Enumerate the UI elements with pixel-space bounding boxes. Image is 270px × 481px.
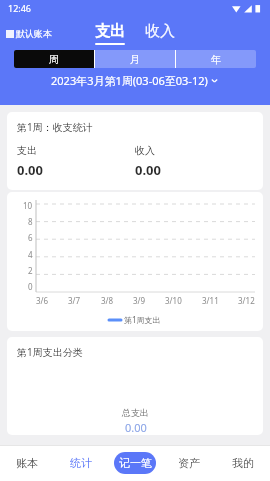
staticText: 资产 (178, 456, 200, 470)
staticText: 年 (211, 53, 221, 66)
staticText: 记一笔 (119, 456, 152, 470)
staticText: 2 (28, 265, 33, 276)
staticText: 3/8 (101, 295, 114, 306)
staticText: 默认账本 (16, 28, 52, 39)
button[interactable]: 2023年3月第1周(03-06至03-12) (0, 73, 270, 88)
staticText: 3/9 (133, 295, 146, 306)
staticText: 月 (130, 53, 140, 66)
staticText: 周 (49, 53, 59, 66)
staticText: 统计 (70, 456, 92, 470)
staticText: 0.00 (17, 161, 43, 179)
button[interactable]: 默认账本 (6, 28, 52, 39)
staticText: 支出 (95, 22, 125, 41)
button[interactable]: 月 (95, 50, 175, 68)
staticText: 8 (28, 216, 33, 227)
staticText: 0 (28, 281, 33, 292)
staticText: 第1周支出分类 (17, 345, 83, 359)
button[interactable]: 资产 (162, 445, 216, 481)
staticText: 支出 (17, 144, 37, 157)
button[interactable]: 年 (176, 50, 256, 68)
staticText: 4 (28, 249, 33, 260)
staticText: 3/7 (68, 295, 81, 306)
staticText: 我的 (232, 456, 254, 470)
button[interactable]: 周 (14, 50, 94, 68)
button[interactable]: 收入 (145, 22, 175, 45)
button[interactable]: 账本 (0, 445, 54, 481)
staticText: 总支出 (122, 407, 149, 418)
staticText: 3/12 (238, 295, 255, 306)
staticText: 第1周：收支统计 (17, 120, 93, 134)
staticText: 收入 (145, 22, 175, 41)
staticText: 第1周支出 (124, 314, 161, 325)
staticText: 3/11 (202, 295, 219, 306)
staticText: 12:46 (8, 2, 32, 14)
staticText: 3/6 (36, 295, 49, 306)
staticText: 收入 (135, 144, 155, 157)
staticText: 3/10 (165, 295, 182, 306)
button[interactable]: 我的 (216, 445, 270, 481)
staticText: 10 (23, 200, 33, 211)
staticText: 6 (28, 232, 33, 243)
staticText: 2023年3月第1周(03-06至03-12) (51, 73, 208, 88)
button[interactable]: 记一笔 (114, 452, 156, 474)
staticText: 账本 (16, 456, 38, 470)
button[interactable]: 支出 (95, 22, 125, 45)
staticText: 0.00 (125, 420, 147, 435)
button[interactable]: 统计 (54, 445, 108, 481)
staticText: 0.00 (135, 161, 161, 179)
